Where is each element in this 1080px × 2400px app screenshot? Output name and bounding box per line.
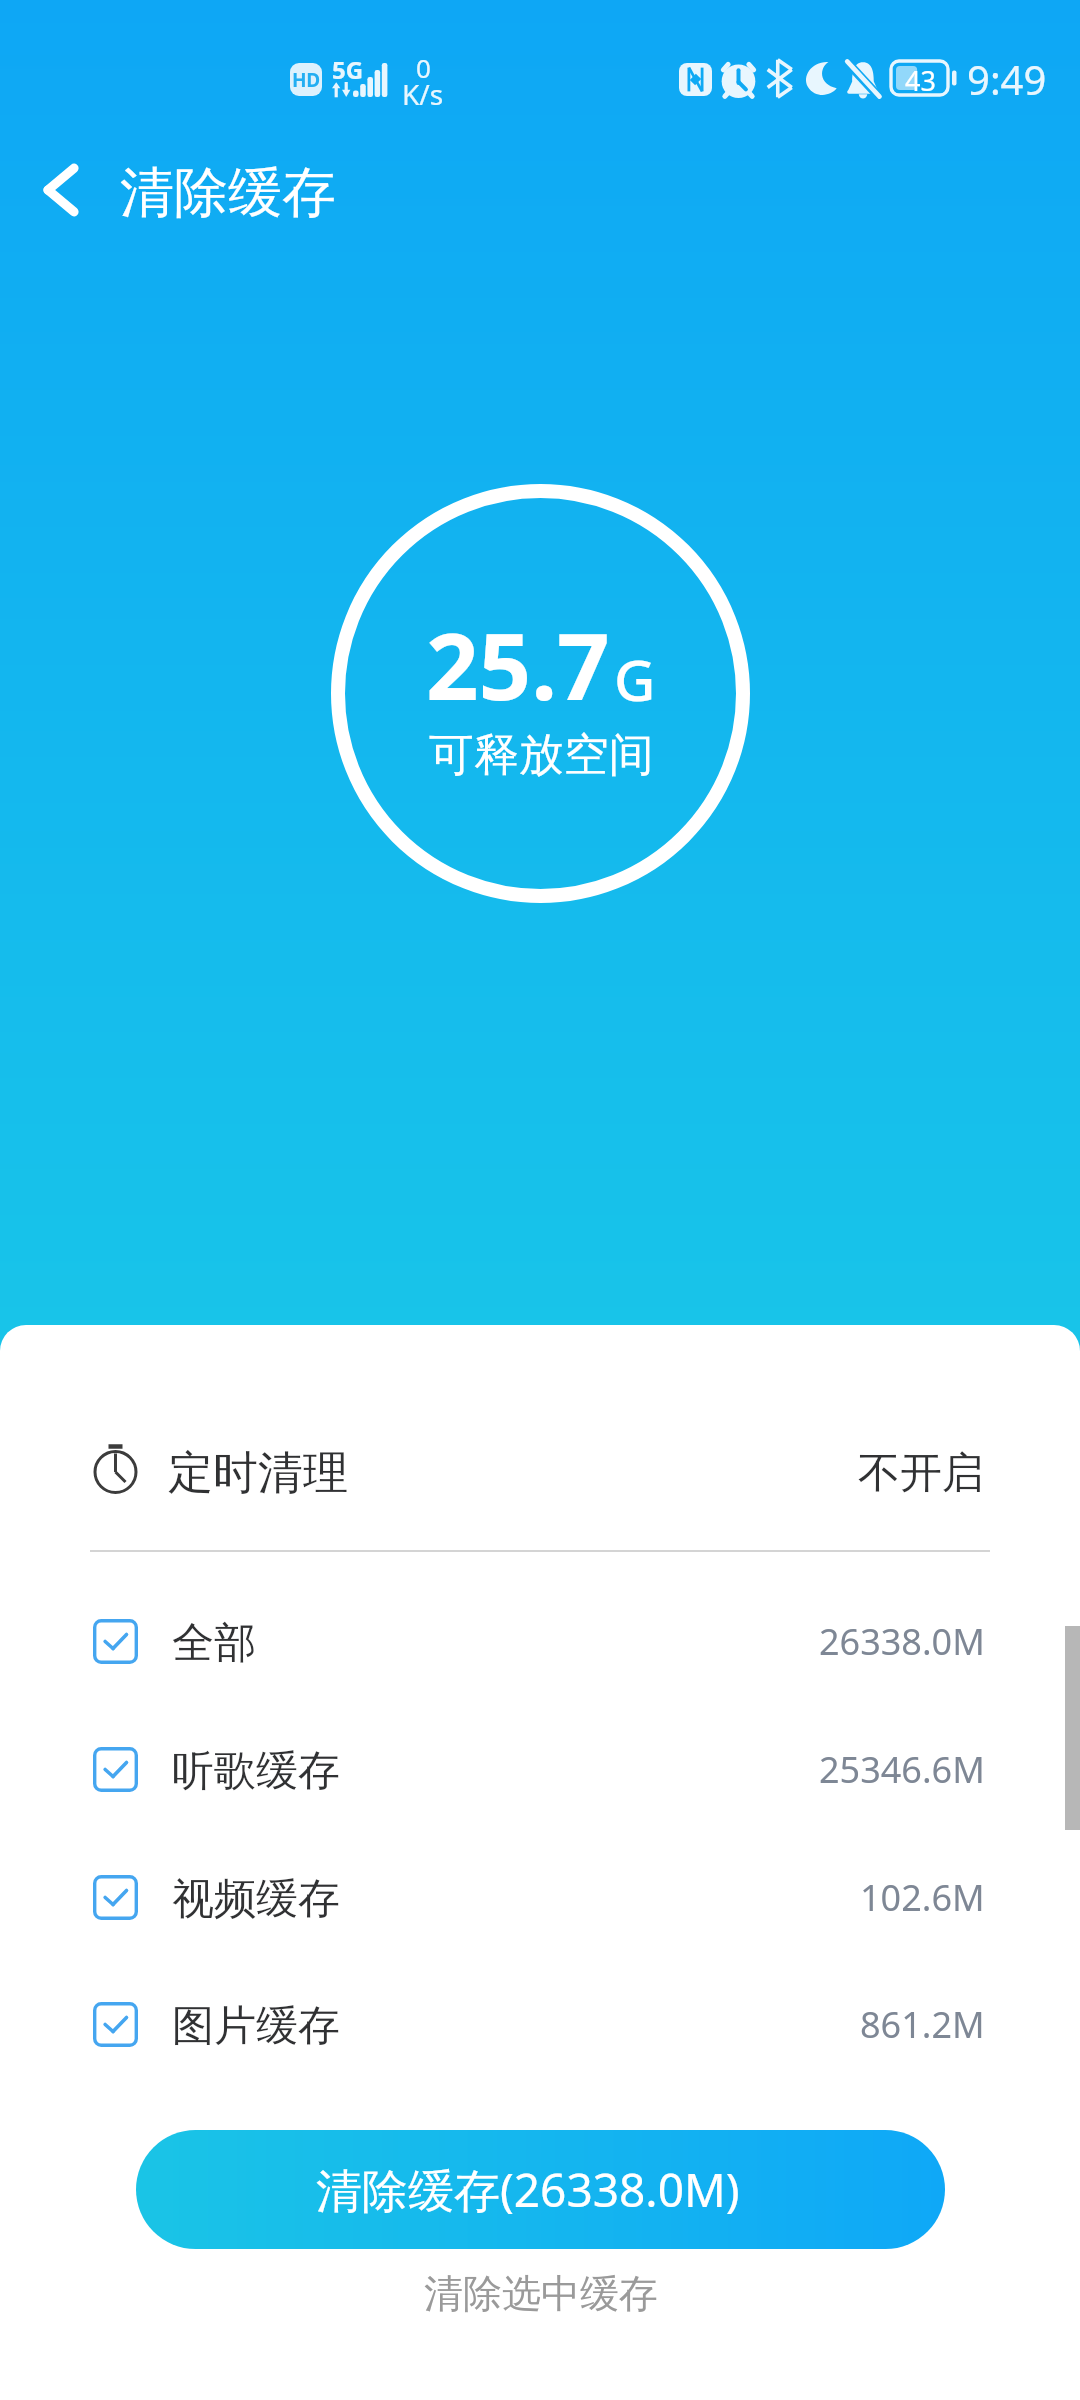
staticText: K/s — [402, 75, 444, 113]
staticText: G — [614, 640, 656, 718]
staticText: 5G — [332, 53, 364, 86]
staticText: 定时清理 — [168, 1445, 348, 1502]
staticText: 清除缓存(26338.0M) — [316, 2158, 740, 2221]
button[interactable]: 视频缓存 — [0, 1833, 1080, 1961]
button[interactable]: 定时清理 — [0, 1325, 1080, 1586]
button[interactable]: 图片缓存 — [0, 1960, 1080, 2088]
staticText: 图片缓存 — [172, 2000, 340, 2053]
staticText: 0 — [416, 50, 431, 85]
staticText: 25.7 — [426, 602, 610, 727]
staticText: 可释放空间 — [429, 727, 654, 784]
staticText: 听歌缓存 — [172, 1745, 340, 1798]
staticText: 清除缓存 — [120, 159, 336, 227]
button[interactable]: 全部 — [0, 1577, 1080, 1705]
staticText: 视频缓存 — [172, 1873, 340, 1926]
staticText: 102.6M — [860, 1873, 985, 1922]
staticText: 不开启 — [858, 1447, 984, 1500]
staticText: 26338.0M — [819, 1617, 985, 1666]
button[interactable]: 清除选中缓存 — [400, 2261, 682, 2326]
staticText: 9:49 — [967, 52, 1047, 106]
button[interactable]: Back — [0, 135, 110, 245]
staticText: 25346.6M — [819, 1745, 985, 1794]
staticText: 43 — [905, 62, 936, 96]
staticText: 全部 — [172, 1617, 256, 1670]
staticText: HD — [292, 67, 320, 93]
staticText: 清除选中缓存 — [424, 2269, 658, 2318]
staticText: 861.2M — [860, 2000, 985, 2049]
button[interactable]: 听歌缓存 — [0, 1705, 1080, 1833]
button[interactable]: 清除缓存(26338.0M) — [136, 2130, 945, 2249]
